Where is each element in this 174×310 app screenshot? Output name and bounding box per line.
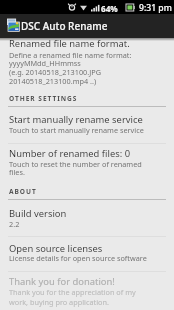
staticText: Build version [9,207,67,220]
staticText: ABOUT [9,187,37,196]
button[interactable] [0,144,174,182]
staticText: work, buying pro application. [9,297,109,307]
staticText: Start manually rename service [9,113,143,126]
button[interactable] [0,39,174,86]
staticText: 9:31 pm [139,2,172,14]
button[interactable] [0,272,174,310]
staticText: License details for open source software [9,253,147,263]
staticText: DSC Auto Rename [21,19,108,33]
staticText: yyyyMMdd_HHmmss [9,58,81,68]
staticText: Renamed file name format. [9,37,130,50]
staticText: files. [9,167,25,177]
staticText: Touch to start manually rename service [9,125,144,135]
staticText: Open source licenses [9,242,103,255]
button[interactable] [0,108,174,142]
staticText: 64% [101,3,118,14]
staticText: 20140518_213100.mp4 ..) [9,76,97,86]
staticText: OTHER SETTINGS [9,94,78,103]
other: DSC Auto Rename icon [7,18,20,32]
staticText: Touch to reset the number of renamed [9,159,142,169]
button[interactable] [0,201,174,235]
button[interactable]: DSC Auto Rename icon [0,14,174,38]
staticText: Number of renamed files: 0 [9,147,131,160]
staticText: Define a renamed file name format: [9,50,132,60]
staticText: Thank you for donation! [9,275,115,288]
staticText: (e.g. 20140518_213100.JPG [9,67,101,77]
staticText: Thank you for the appreciation of my [9,287,136,297]
button[interactable] [0,237,174,271]
staticText: 2.2 [9,219,20,229]
